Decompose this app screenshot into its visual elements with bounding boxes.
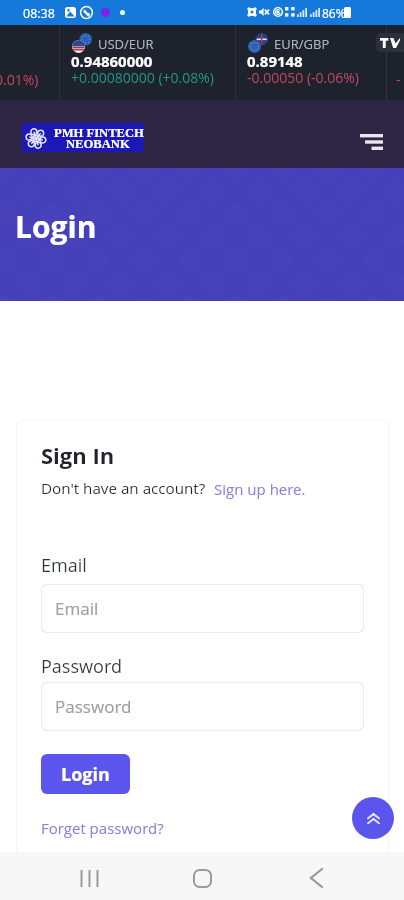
staticText: Login [15,206,97,247]
button[interactable]: Email [41,584,364,633]
staticText: PMH FINTECH [54,126,144,140]
staticText: 08:38 [23,5,55,22]
staticText: - [396,70,401,89]
button[interactable]: Login [41,754,130,794]
staticText: EUR/GBP [274,35,330,53]
staticText: Don't have an account? [41,478,206,499]
staticText: USD/EUR [98,35,154,53]
staticText: NEOBANK [66,137,130,151]
button[interactable]: Sign up here. [214,479,306,499]
button[interactable]: Scroll back to top [352,797,394,839]
button[interactable]: PMH Fintech Neobank home [22,123,144,152]
staticText: Password [41,654,122,679]
staticText: 0.94860000 [71,51,153,71]
button[interactable]: TradingView [376,33,404,52]
staticText: 0.01%) [0,70,39,89]
button[interactable]: Open navigation menu [349,120,393,164]
staticText: Login [61,762,110,787]
staticText: Email [55,597,99,620]
button[interactable]: Home [178,854,226,900]
button[interactable]: Password [41,682,364,731]
staticText: 86% [322,5,346,21]
staticText: +0.00080000 (+0.08%) [71,68,214,87]
button[interactable]: Back [292,854,340,900]
staticText: -0.00050 (-0.06%) [247,68,359,87]
button[interactable]: Recent apps [64,854,112,900]
button[interactable]: Forget password? [41,818,164,838]
staticText: 0.89148 [247,51,303,71]
staticText: Email [41,553,87,578]
staticText: Sign In [41,440,115,470]
staticText: Password [55,695,132,718]
